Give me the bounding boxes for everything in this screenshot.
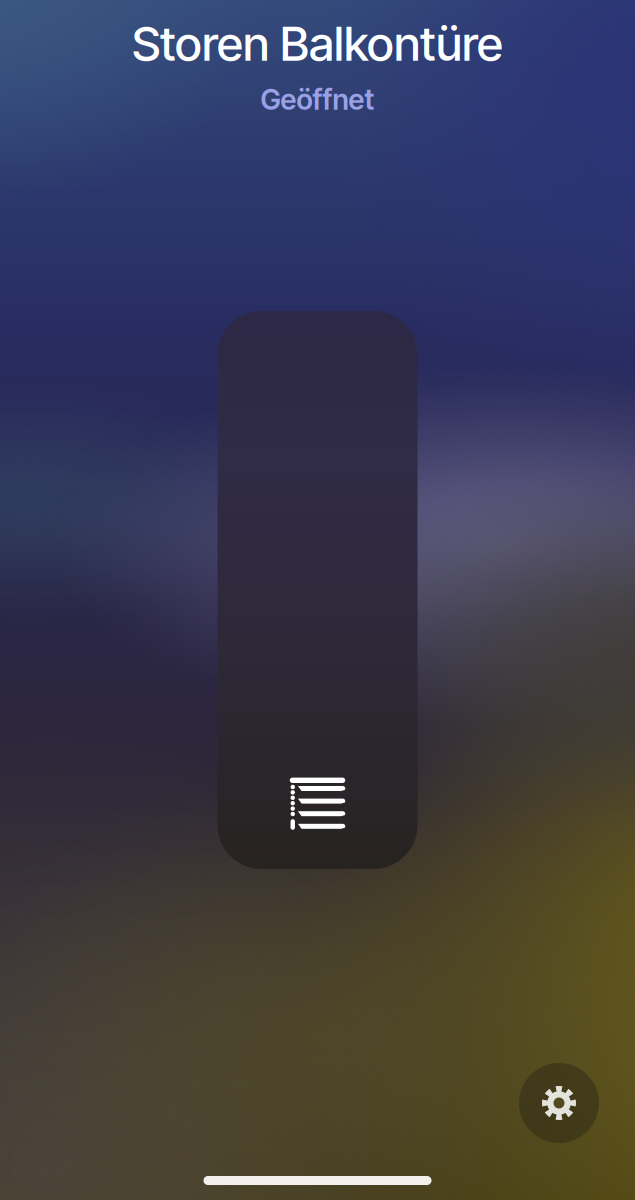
button[interactable]: [217, 311, 417, 869]
staticText: Geöffnet: [260, 82, 374, 117]
staticText: Storen Balkontüre: [132, 15, 503, 72]
button[interactable]: Settings: [519, 1063, 599, 1143]
